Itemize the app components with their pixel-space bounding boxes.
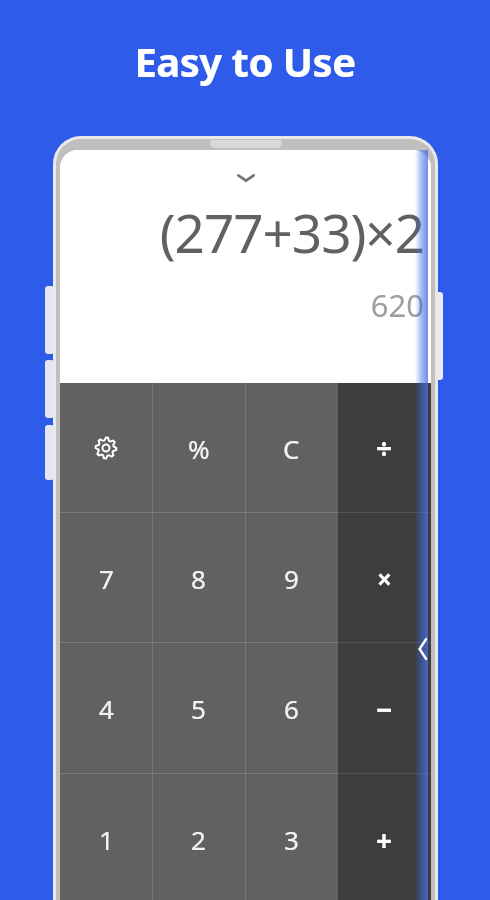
button[interactable]: 9 [245,513,338,643]
staticText: 4 [99,691,114,726]
staticText: Easy to Use [134,34,356,88]
button[interactable]: C [245,383,338,513]
staticText: 1 [99,822,114,857]
staticText: + [376,821,393,859]
button[interactable]: 4 [60,643,152,774]
staticText: C [283,431,300,466]
staticText: 6 [284,691,299,726]
staticText: 9 [284,561,299,596]
button[interactable]: 7 [60,513,152,643]
staticText: 8 [191,561,206,596]
button[interactable]: − [338,643,431,774]
staticText: (277+33)×2 [60,196,424,268]
other: Back [416,636,430,662]
staticText: % [188,431,210,466]
staticText: 620 [60,284,424,326]
button[interactable]: ÷ [338,383,431,513]
button[interactable]: 6 [245,643,338,774]
button[interactable]: 3 [245,774,338,900]
staticText: 5 [191,691,206,726]
button[interactable]: × [338,513,431,643]
button[interactable]: + [338,774,431,900]
button[interactable]: % [152,383,245,513]
staticText: × [377,561,392,596]
button[interactable]: Expand history [235,172,257,184]
button[interactable]: Settings [60,383,152,513]
staticText: ÷ [376,429,393,467]
staticText: 7 [99,561,114,596]
staticText: − [376,690,393,728]
staticText: 2 [191,822,206,857]
button[interactable]: 1 [60,774,152,900]
button[interactable]: 5 [152,643,245,774]
staticText: 3 [284,822,299,857]
button[interactable]: 2 [152,774,245,900]
button[interactable]: 8 [152,513,245,643]
other: Settings [93,435,119,461]
